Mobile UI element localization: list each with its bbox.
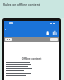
- staticText: Offline content: [6, 57, 57, 61]
- staticText: Rules on offline content: [3, 3, 41, 7]
